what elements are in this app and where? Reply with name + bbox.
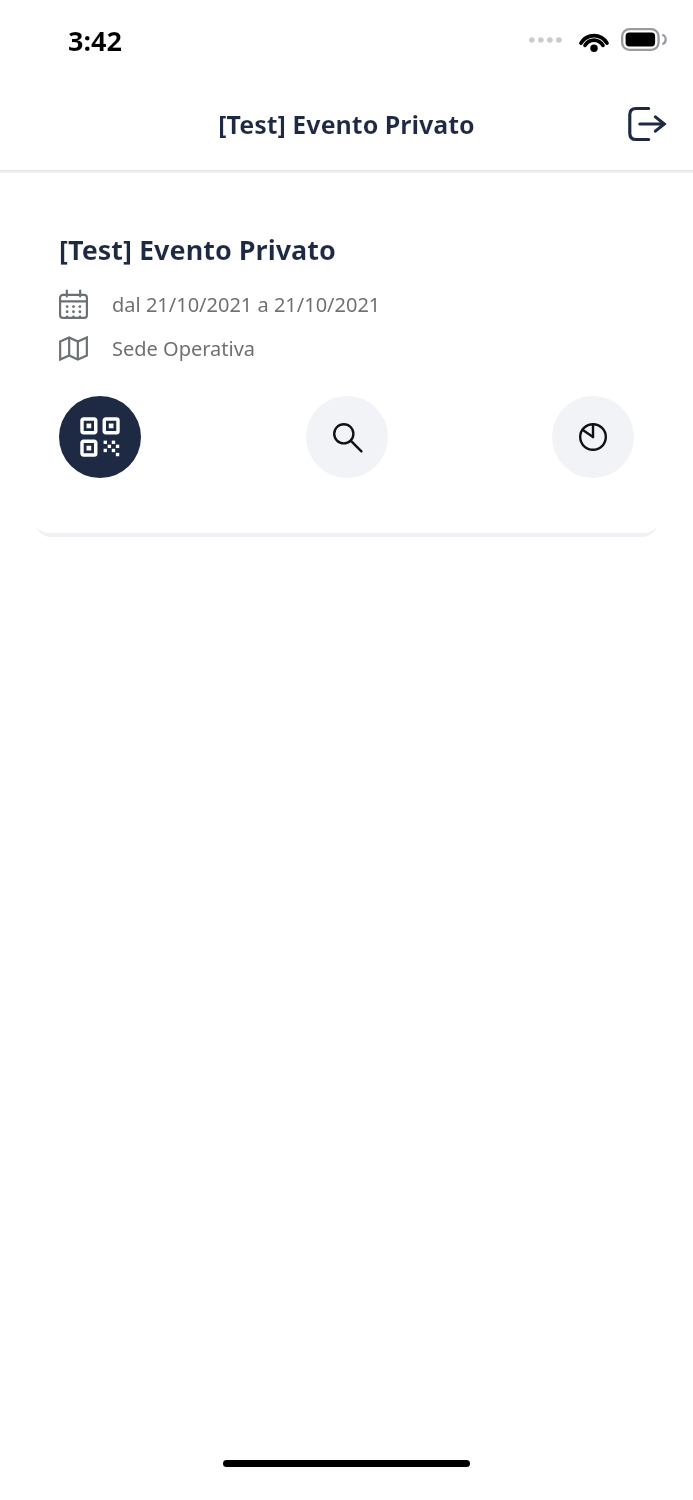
button[interactable]: Logout bbox=[619, 96, 675, 152]
staticText: Sede Operativa bbox=[112, 335, 256, 362]
button[interactable]: [Test] Evento Privato bbox=[33, 207, 660, 533]
button[interactable]: QR code bbox=[59, 396, 141, 478]
button[interactable]: Search bbox=[306, 396, 388, 478]
staticText: [Test] Evento Privato bbox=[218, 107, 475, 141]
staticText: 3:42 bbox=[68, 22, 122, 59]
staticText: dal 21/10/2021 a 21/10/2021 bbox=[112, 291, 381, 318]
button[interactable]: Statistics bbox=[552, 396, 634, 478]
staticText: [Test] Evento Privato bbox=[59, 231, 336, 268]
